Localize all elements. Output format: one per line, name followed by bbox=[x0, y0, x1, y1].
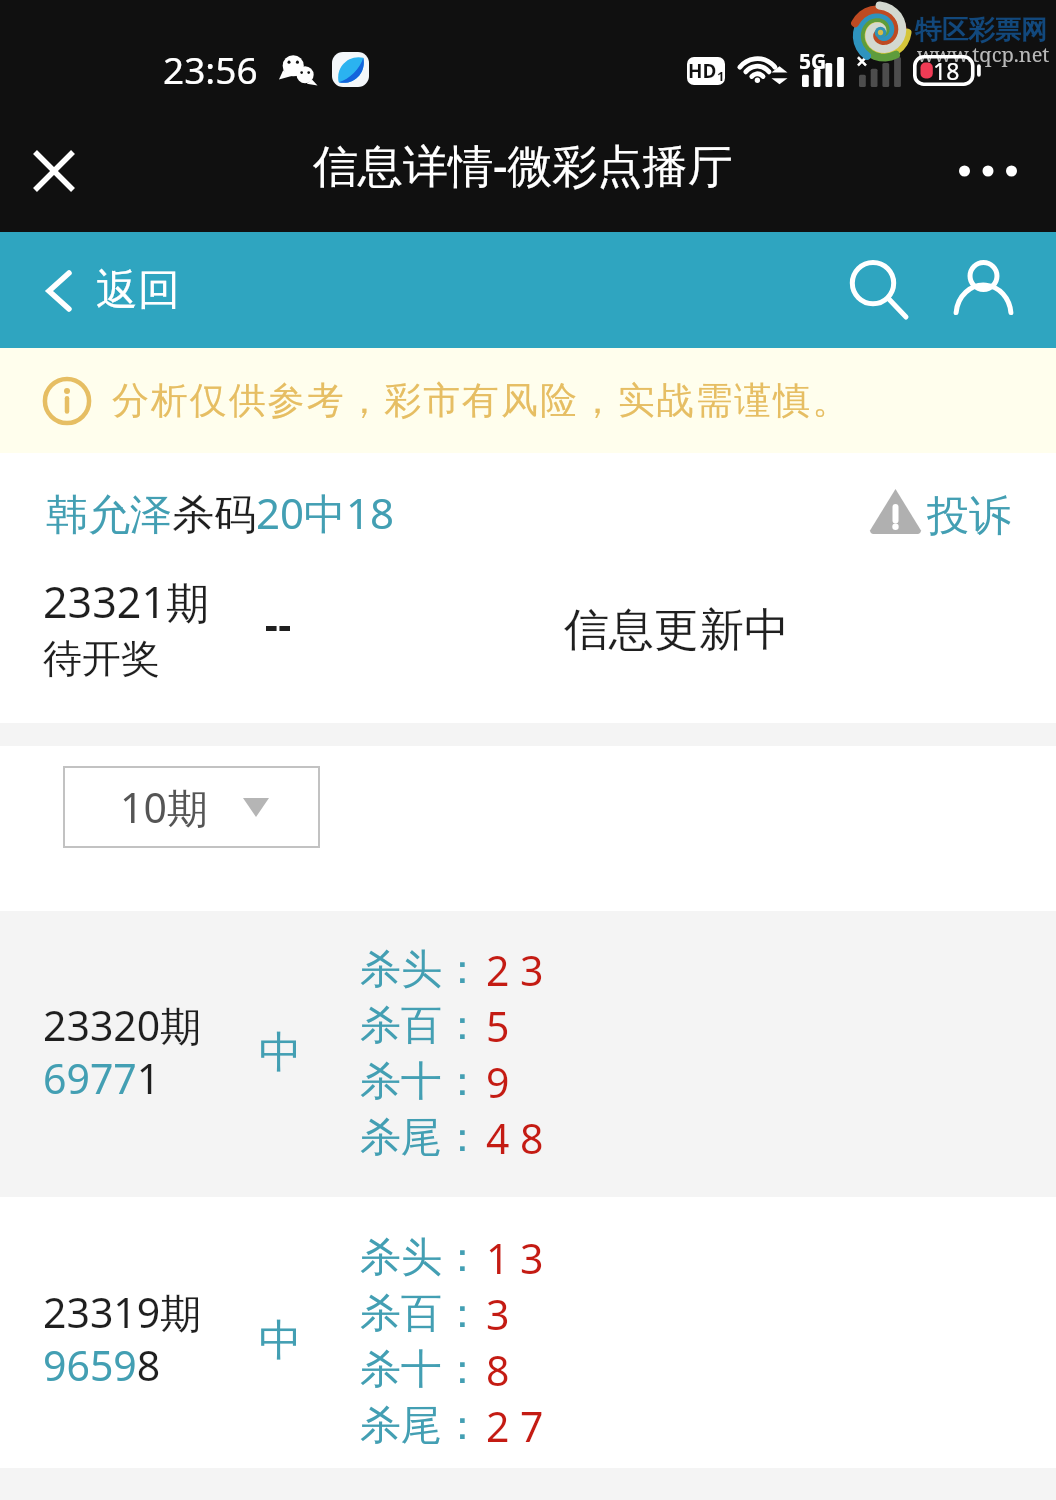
staticText: 2 7 bbox=[486, 1398, 544, 1454]
staticText: 投诉 bbox=[927, 490, 1011, 543]
button[interactable]: More options bbox=[948, 141, 1028, 201]
staticText: 3 bbox=[486, 1286, 510, 1342]
staticText: HD bbox=[688, 58, 717, 84]
staticText: 2 3 bbox=[486, 942, 544, 998]
staticText: 待开奖 bbox=[43, 634, 160, 683]
staticText: 信息更新中 bbox=[564, 602, 789, 659]
staticText: 4 8 bbox=[486, 1110, 544, 1166]
staticText: 23:56 bbox=[163, 44, 258, 94]
button[interactable]: Close bbox=[22, 139, 86, 203]
staticText: 杀尾： bbox=[360, 1112, 486, 1164]
staticText: 5G bbox=[799, 47, 827, 76]
staticText: www.tqcp.net bbox=[917, 41, 1050, 68]
staticText: 9 bbox=[486, 1054, 510, 1110]
staticText: 杀百： bbox=[360, 1000, 486, 1052]
staticText: 信息详情-微彩点播厅 bbox=[313, 134, 733, 195]
staticText: 杀头： bbox=[360, 1232, 486, 1284]
staticText: 1 bbox=[717, 67, 725, 85]
button[interactable]: 23320期 bbox=[0, 911, 1056, 1197]
staticText: 8 bbox=[486, 1342, 510, 1398]
staticText: 杀头： bbox=[360, 944, 486, 996]
button[interactable]: 返回 bbox=[46, 264, 180, 317]
staticText: 1 3 bbox=[486, 1230, 544, 1286]
staticText: 96598 bbox=[43, 1337, 161, 1393]
staticText: 杀尾： bbox=[360, 1400, 486, 1452]
staticText: 69771 bbox=[43, 1050, 161, 1106]
staticText: 韩允泽杀码20中18 bbox=[46, 484, 395, 541]
staticText: 10期 bbox=[120, 779, 208, 835]
button[interactable]: 10期 bbox=[63, 766, 320, 848]
button[interactable]: 投诉 bbox=[870, 489, 1011, 542]
staticText: 中 bbox=[259, 1314, 302, 1368]
staticText: 中 bbox=[259, 1026, 302, 1080]
staticText: 分析仅供参考，彩市有风险，实战需谨慎。 bbox=[112, 377, 852, 424]
staticText: × bbox=[856, 47, 869, 76]
staticText: 23319期 bbox=[43, 1284, 202, 1337]
staticText: 23320期 bbox=[43, 997, 202, 1050]
staticText: 杀十： bbox=[360, 1056, 486, 1108]
staticText: 特区彩票网 bbox=[915, 13, 1048, 46]
staticText: 5 bbox=[486, 998, 510, 1054]
staticText: 返回 bbox=[96, 264, 180, 317]
button[interactable]: Search bbox=[840, 251, 918, 329]
button[interactable]: 23319期 bbox=[0, 1197, 1056, 1468]
staticText: 杀十： bbox=[360, 1344, 486, 1396]
button[interactable]: Account bbox=[944, 251, 1022, 329]
staticText: 18 bbox=[933, 55, 960, 86]
staticText: 杀百： bbox=[360, 1288, 486, 1340]
staticText: 23321期 bbox=[43, 572, 209, 631]
